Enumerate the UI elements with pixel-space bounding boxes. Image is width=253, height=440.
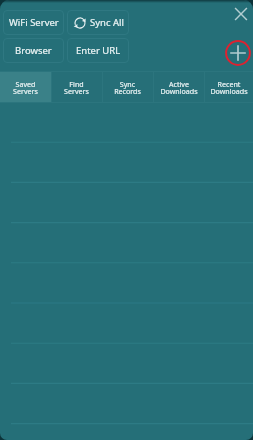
staticText: Recent Downloads: [210, 79, 248, 97]
staticText: Find Servers: [64, 79, 89, 97]
staticText: Sync Records: [114, 79, 141, 97]
button[interactable]: Sync Records: [102, 72, 153, 103]
staticText: Enter URL: [76, 44, 121, 57]
button[interactable]: Active Downloads: [153, 72, 204, 103]
staticText: Active Downloads: [160, 79, 198, 97]
button[interactable]: Enter URL: [67, 38, 129, 63]
staticText: Sync All: [90, 16, 124, 29]
button[interactable]: Add: [225, 40, 251, 66]
button[interactable]: Sync All: [67, 10, 129, 35]
button[interactable]: [0, 423, 253, 440]
button[interactable]: Browser: [3, 38, 64, 63]
staticText: Browser: [15, 44, 52, 57]
staticText: Saved Servers: [13, 79, 38, 97]
button[interactable]: Find Servers: [51, 72, 102, 103]
button[interactable]: Saved Servers: [0, 72, 51, 103]
button[interactable]: Close: [233, 6, 249, 22]
staticText: WiFi Server: [9, 16, 59, 29]
button[interactable]: Recent Downloads: [204, 72, 253, 103]
button[interactable]: WiFi Server: [3, 10, 64, 35]
